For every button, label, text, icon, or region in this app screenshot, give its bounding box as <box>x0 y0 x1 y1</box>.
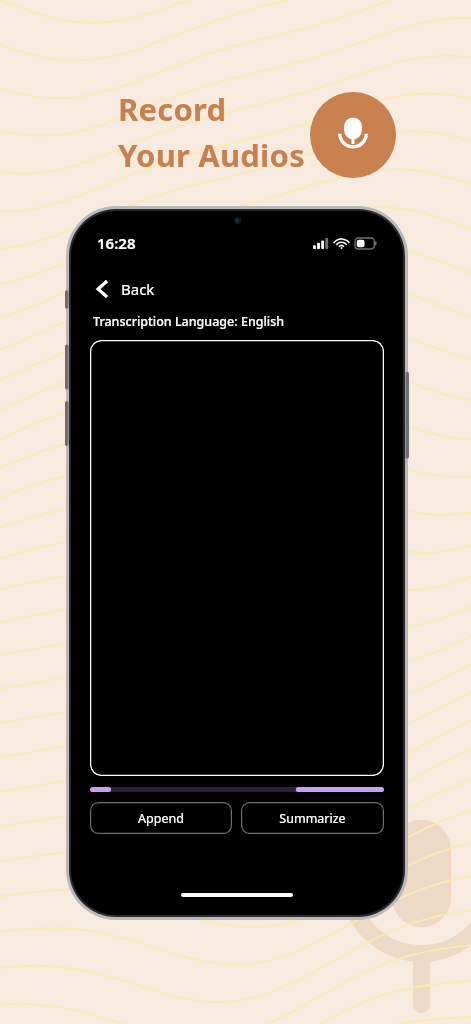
staticText: Append <box>138 810 184 827</box>
button[interactable]: Record audio <box>310 92 396 178</box>
button[interactable]: Append <box>90 802 232 834</box>
staticText: Your Audios <box>118 134 305 176</box>
staticText: Summarize <box>279 810 346 827</box>
staticText: Transcription Language: English <box>93 313 285 330</box>
staticText: 16:28 <box>97 233 136 253</box>
button[interactable] <box>90 340 384 776</box>
button[interactable]: Playback position <box>90 787 384 792</box>
button[interactable]: Summarize <box>241 802 384 834</box>
staticText: Record <box>118 88 227 130</box>
staticText: Back <box>121 279 155 299</box>
button[interactable]: Back <box>91 273 161 305</box>
